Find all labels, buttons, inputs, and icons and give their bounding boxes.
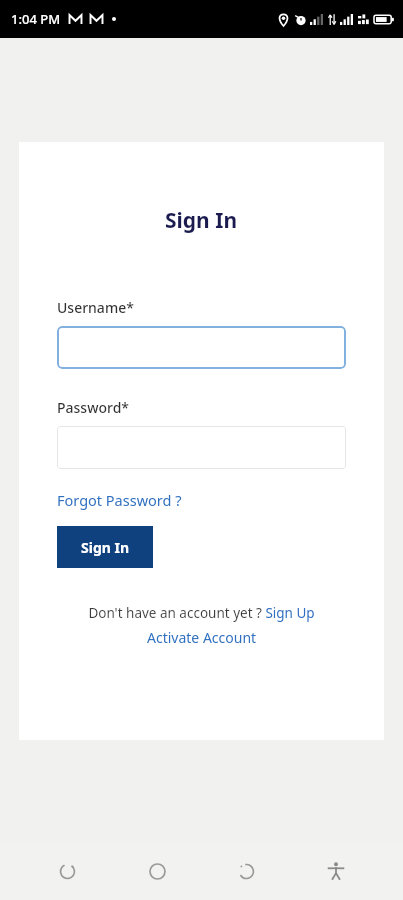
button[interactable]: Home [135, 849, 179, 893]
button[interactable] [57, 326, 346, 369]
button[interactable]: Don't have an account yet ? Sign Up [88, 604, 315, 622]
button[interactable]: Recent apps [224, 849, 268, 893]
button[interactable]: Sign In [57, 526, 153, 568]
button[interactable]: Back [45, 849, 89, 893]
button[interactable]: Accessibility [314, 849, 358, 893]
button[interactable] [57, 426, 346, 469]
button[interactable]: Activate Account [147, 628, 257, 647]
staticText: Password* [57, 398, 130, 417]
staticText: Activate Account [147, 628, 257, 647]
staticText: Forgot Password ? [57, 490, 182, 510]
staticText: Sign In [81, 538, 130, 557]
staticText: 1:04 PM [11, 10, 61, 28]
button[interactable]: Forgot Password ? [57, 490, 182, 510]
staticText: Username* [57, 298, 134, 317]
staticText: Sign In [165, 206, 238, 235]
